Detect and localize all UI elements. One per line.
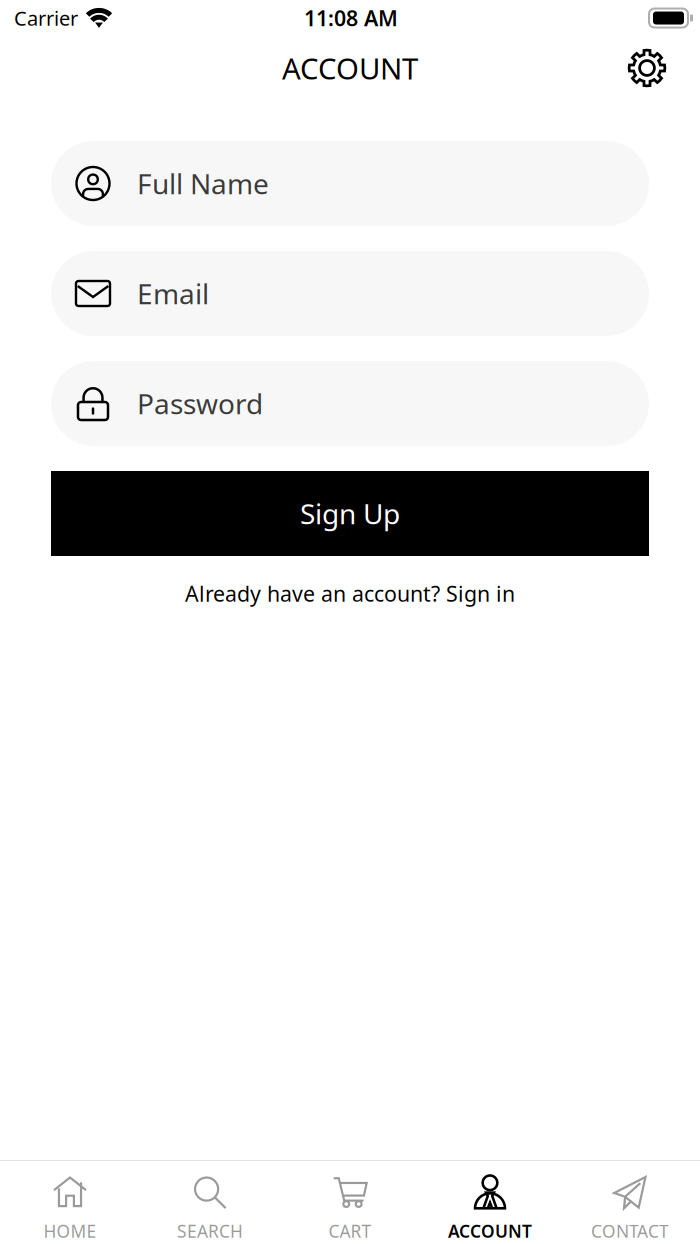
button[interactable]: Already have an account? Sign in [51,581,649,606]
button[interactable]: SEARCH [140,1155,280,1244]
staticText: CONTACT [591,1219,669,1242]
button[interactable]: ACCOUNT [420,1155,560,1244]
staticText: Already have an account? Sign in [185,579,515,608]
staticText: Email [137,275,209,312]
staticText: Password [137,385,263,422]
staticText: ACCOUNT [448,1219,532,1242]
staticText: ACCOUNT [282,48,418,87]
staticText: Carrier [14,5,78,31]
button[interactable]: Sign Up [51,471,649,556]
staticText: 11:08 AM [304,4,398,32]
staticText: HOME [43,1219,96,1242]
button[interactable]: Settings [620,41,674,95]
button[interactable]: CONTACT [560,1155,700,1244]
staticText: Sign Up [300,495,400,532]
button[interactable]: CART [280,1155,420,1244]
staticText: Full Name [137,165,269,202]
staticText: CART [328,1219,371,1242]
staticText: SEARCH [177,1219,243,1242]
button[interactable]: HOME [0,1155,140,1244]
